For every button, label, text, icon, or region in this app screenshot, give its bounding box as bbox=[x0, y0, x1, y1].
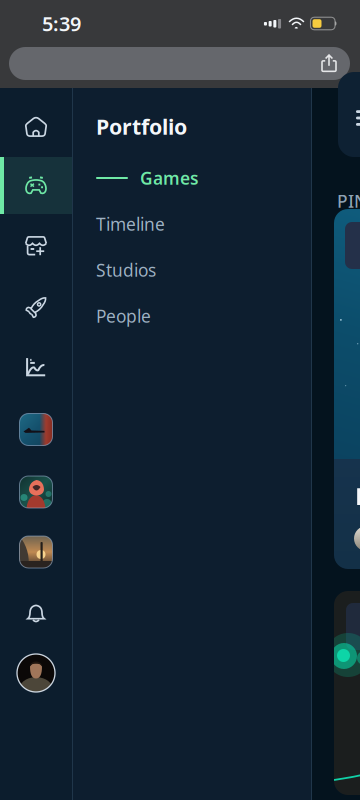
button[interactable]: Game project one bbox=[0, 397, 72, 462]
button[interactable]: Launches bbox=[0, 277, 72, 337]
button[interactable]: People bbox=[72, 293, 312, 339]
button[interactable]: Notifications bbox=[0, 582, 72, 644]
staticText: Timeline bbox=[96, 212, 165, 235]
button[interactable]: Games bbox=[72, 155, 312, 201]
button[interactable]: Share bbox=[308, 47, 350, 80]
button[interactable]: Studios bbox=[72, 247, 312, 293]
button[interactable]: Add store page bbox=[0, 214, 72, 277]
staticText: Games bbox=[140, 166, 199, 189]
staticText: Studios bbox=[96, 258, 156, 281]
button[interactable] bbox=[315, 569, 360, 795]
staticText: 5:39 bbox=[42, 10, 81, 37]
button[interactable]: Games bbox=[0, 157, 72, 214]
button[interactable]: Your profile bbox=[0, 644, 72, 702]
staticText: People bbox=[96, 304, 151, 327]
staticText: PINNED bbox=[337, 189, 360, 212]
staticText: Portfolio bbox=[96, 112, 187, 141]
button[interactable]: Home bbox=[0, 97, 72, 157]
button[interactable]: F bbox=[315, 209, 360, 569]
button[interactable]: Game project three bbox=[0, 522, 72, 582]
button[interactable]: Menu bbox=[319, 88, 360, 134]
staticText: F bbox=[355, 480, 360, 512]
button[interactable]: Analytics bbox=[0, 337, 72, 397]
button[interactable]: Timeline bbox=[72, 201, 312, 247]
button[interactable]: Game project two bbox=[0, 462, 72, 522]
